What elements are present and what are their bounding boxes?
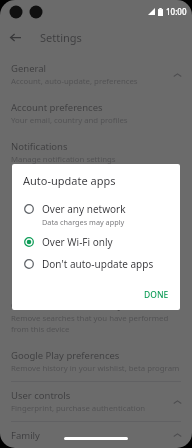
staticText: Over any network xyxy=(42,202,126,216)
staticText: Google Play preferences xyxy=(11,349,120,362)
staticText: Auto-update apps xyxy=(23,173,116,188)
button[interactable]: General xyxy=(0,55,192,94)
staticText: Don't auto-update apps xyxy=(42,257,154,271)
button[interactable]: Account preferences xyxy=(0,94,192,133)
staticText: Over Wi-Fi only xyxy=(42,235,113,249)
button[interactable]: DONE xyxy=(133,284,180,306)
button[interactable]: Google Play preferences xyxy=(0,342,192,381)
staticText: Notifications xyxy=(11,140,68,153)
button[interactable]: Don't auto-update apps xyxy=(12,253,180,275)
staticText: Manage notification settings xyxy=(11,154,116,165)
staticText: DONE xyxy=(144,289,169,301)
staticText: Fingerprint, purchase authentication xyxy=(11,403,146,414)
button[interactable]: Back xyxy=(0,22,30,52)
staticText: Family xyxy=(11,429,40,441)
staticText: Your email, country and profiles xyxy=(11,115,128,126)
staticText: Clear local search history xyxy=(11,299,123,312)
button[interactable]: User controls xyxy=(0,382,192,421)
staticText: Data charges may apply xyxy=(42,217,125,227)
staticText: Account preferences xyxy=(11,101,103,114)
staticText: Remove history in your wishlist, beta pr… xyxy=(11,363,180,374)
staticText: 10:00 xyxy=(166,6,187,17)
staticText: Remove searches that you have performed … xyxy=(11,313,185,335)
staticText: Account, auto-update, preferences xyxy=(11,76,138,87)
button[interactable]: Over Wi-Fi only xyxy=(12,231,180,253)
staticText: Settings xyxy=(40,30,82,45)
button[interactable]: Family xyxy=(0,422,192,448)
staticText: User controls xyxy=(11,389,71,402)
button[interactable]: Over any network xyxy=(12,198,180,231)
button[interactable]: Notifications xyxy=(0,133,192,172)
staticText: General xyxy=(11,62,47,75)
button[interactable]: Clear local search history xyxy=(0,292,192,342)
